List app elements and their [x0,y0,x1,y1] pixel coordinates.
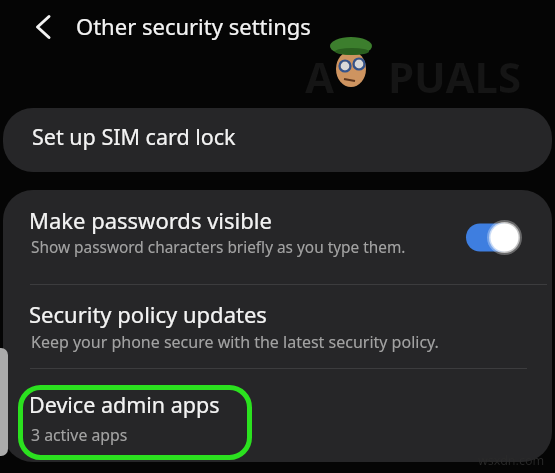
staticText: Device admin apps [29,390,220,419]
button[interactable] [462,220,524,255]
staticText: Set up SIM card lock [32,122,236,151]
staticText: Security policy updates [29,299,267,329]
button[interactable]: Set up SIM card lock [3,108,552,172]
button[interactable]: Security policy updates [3,284,552,368]
staticText: 3 active apps [31,424,128,446]
staticText: wsxdn.com [478,452,545,469]
staticText: PUALS [388,48,522,105]
staticText: A [305,48,335,105]
staticText: Keep your phone secure with the latest s… [31,331,439,353]
button[interactable]: Make passwords visible [3,190,552,284]
button[interactable] [36,15,50,39]
staticText: Other security settings [76,11,311,41]
staticText: Show password characters briefly as you … [31,237,406,258]
button[interactable]: Device admin apps [3,368,552,462]
staticText: Make passwords visible [29,205,272,235]
